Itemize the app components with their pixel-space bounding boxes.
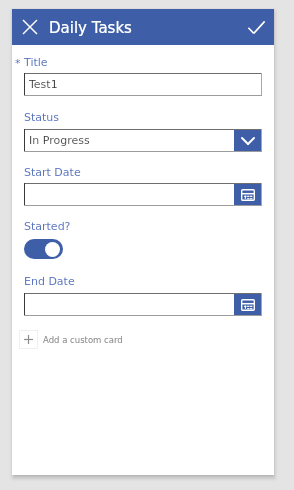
button[interactable]: Save bbox=[238, 9, 274, 45]
button[interactable]: Started toggle bbox=[24, 239, 63, 259]
staticText: Status bbox=[24, 111, 60, 124]
staticText: Title bbox=[24, 56, 48, 69]
staticText: * bbox=[15, 57, 21, 70]
button[interactable]: Pick date bbox=[234, 293, 262, 316]
staticText: Daily Tasks bbox=[49, 19, 132, 36]
button[interactable]: Pick date bbox=[234, 183, 262, 206]
staticText: Started? bbox=[24, 220, 71, 233]
button[interactable]: In Progress bbox=[24, 129, 262, 152]
button[interactable]: Test1 bbox=[24, 73, 262, 96]
staticText: Add a custom card bbox=[43, 335, 123, 345]
button[interactable] bbox=[24, 183, 234, 206]
staticText: In Progress bbox=[29, 134, 234, 147]
button[interactable]: Add a custom card bbox=[19, 330, 267, 349]
staticText: Test1 bbox=[29, 78, 58, 91]
button[interactable] bbox=[24, 293, 234, 316]
staticText: Start Date bbox=[24, 166, 81, 179]
staticText: End Date bbox=[24, 275, 75, 288]
button[interactable]: Close bbox=[12, 9, 48, 45]
